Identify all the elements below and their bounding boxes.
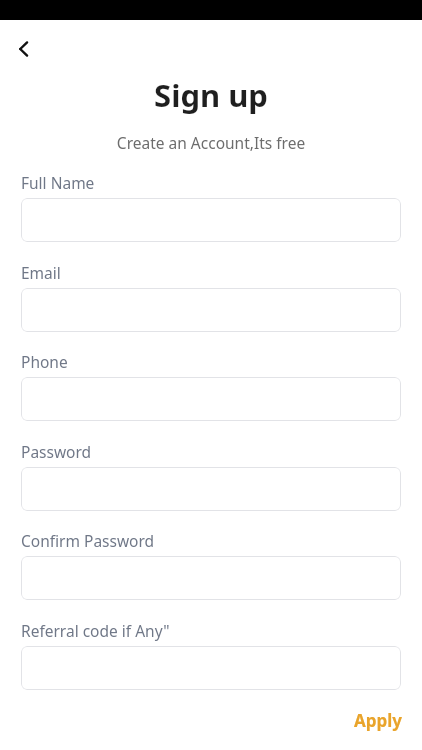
button[interactable]: Confirm Password (21, 556, 401, 600)
button[interactable]: Phone (21, 377, 401, 421)
button[interactable]: Referral code if Any" (21, 646, 401, 690)
staticText: Email (21, 262, 61, 283)
button[interactable]: Password (21, 467, 401, 511)
button[interactable]: Apply (348, 705, 409, 736)
button[interactable]: Back (6, 31, 42, 67)
staticText: Full Name (21, 172, 95, 193)
staticText: Sign up (0, 74, 422, 116)
button[interactable]: Full Name (21, 198, 401, 242)
staticText: Apply (354, 709, 403, 732)
button[interactable]: Email (21, 288, 401, 332)
staticText: Confirm Password (21, 530, 155, 551)
staticText: Referral code if Any" (21, 620, 170, 641)
staticText: Phone (21, 351, 68, 372)
staticText: Create an Account,Its free (0, 132, 422, 153)
staticText: Password (21, 441, 92, 462)
